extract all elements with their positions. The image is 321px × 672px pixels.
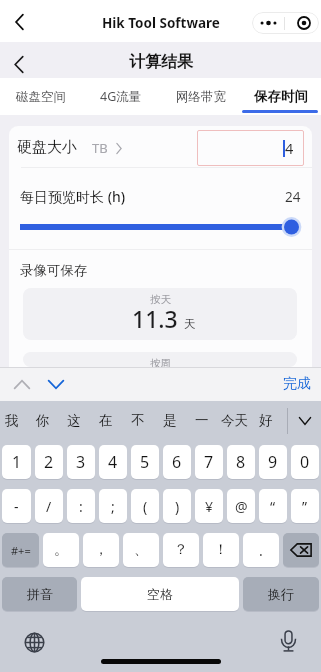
button[interactable]: #+= bbox=[2, 533, 39, 567]
staticText: 4G流量 bbox=[100, 88, 142, 105]
button[interactable]: 完成 bbox=[283, 375, 311, 393]
button[interactable]: 好 bbox=[250, 401, 282, 440]
staticText: 是 bbox=[163, 412, 177, 429]
button[interactable]: “ bbox=[259, 489, 287, 523]
button[interactable]: 保存时间 bbox=[241, 78, 321, 115]
staticText: 。 bbox=[54, 541, 68, 559]
staticText: 4 bbox=[285, 138, 294, 158]
button[interactable]: 8 bbox=[227, 445, 255, 479]
staticText: 每日预览时长 (h) bbox=[20, 187, 126, 206]
staticText: TB bbox=[92, 139, 108, 157]
staticText: 你 bbox=[36, 412, 50, 429]
button[interactable]: / bbox=[35, 489, 63, 523]
staticText: ” bbox=[302, 497, 308, 516]
button[interactable]: ( bbox=[131, 489, 159, 523]
staticText: 6 bbox=[172, 451, 182, 473]
staticText: 空格 bbox=[147, 586, 173, 602]
button[interactable]: 不 bbox=[122, 401, 154, 440]
button[interactable]: 4G流量 bbox=[81, 78, 161, 115]
button[interactable]: 4 bbox=[197, 130, 304, 166]
staticText: 9 bbox=[268, 451, 278, 473]
staticText: 24 bbox=[285, 188, 301, 206]
button[interactable]: 我 bbox=[0, 401, 27, 440]
button[interactable]: 一 bbox=[186, 401, 218, 440]
button[interactable]: 、 bbox=[123, 533, 159, 567]
staticText: 天 bbox=[184, 317, 196, 331]
staticText: 磁盘空间 bbox=[16, 89, 66, 105]
button[interactable]: 你 bbox=[27, 401, 58, 440]
button[interactable]: 3 bbox=[67, 445, 95, 479]
button[interactable]: 4 bbox=[99, 445, 127, 479]
staticText: 按天 bbox=[150, 293, 171, 306]
staticText: @ bbox=[235, 497, 248, 516]
staticText: 网络带宽 bbox=[176, 89, 226, 105]
button[interactable]: Back bbox=[6, 9, 32, 35]
button[interactable]: 。 bbox=[43, 533, 79, 567]
staticText: 这 bbox=[67, 412, 81, 429]
button[interactable]: Voice input bbox=[274, 627, 302, 655]
staticText: : bbox=[79, 497, 83, 516]
staticText: 好 bbox=[259, 412, 273, 429]
button[interactable]: 网络带宽 bbox=[161, 78, 241, 115]
button[interactable]: 按周 bbox=[23, 352, 297, 367]
button[interactable]: Backspace bbox=[283, 533, 319, 567]
staticText: 录像可保存 bbox=[20, 262, 88, 279]
staticText: 7 bbox=[204, 451, 214, 473]
button[interactable]: ” bbox=[291, 489, 319, 523]
staticText: 保存时间 bbox=[254, 88, 308, 105]
staticText: 2 bbox=[44, 451, 54, 473]
staticText: 拼音 bbox=[27, 586, 53, 602]
button[interactable]: ！ bbox=[203, 533, 239, 567]
button[interactable]: Navigate back bbox=[7, 52, 31, 76]
button[interactable]: 2 bbox=[35, 445, 63, 479]
staticText: “ bbox=[270, 497, 276, 516]
staticText: ( bbox=[143, 497, 148, 516]
button[interactable]: 是 bbox=[154, 401, 186, 440]
staticText: 我 bbox=[5, 412, 19, 429]
staticText: 硬盘大小 bbox=[17, 138, 77, 157]
button[interactable]: TB bbox=[92, 139, 122, 157]
button[interactable]: ; bbox=[99, 489, 127, 523]
button[interactable]: Change keyboard bbox=[20, 628, 48, 656]
staticText: ？ bbox=[174, 541, 188, 559]
button[interactable]: - bbox=[2, 489, 31, 523]
button[interactable]: ¥ bbox=[195, 489, 223, 523]
button[interactable]: 在 bbox=[90, 401, 122, 440]
button[interactable]: ？ bbox=[163, 533, 199, 567]
button[interactable]: 9 bbox=[259, 445, 287, 479]
button[interactable]: 这 bbox=[58, 401, 90, 440]
button[interactable]: More suggestions bbox=[294, 410, 316, 432]
staticText: 11.3 bbox=[132, 303, 178, 334]
button[interactable]: Close bbox=[294, 13, 314, 33]
button[interactable]: @ bbox=[227, 489, 255, 523]
staticText: 在 bbox=[99, 412, 113, 429]
staticText: ， bbox=[94, 541, 108, 559]
staticText: ; bbox=[111, 497, 115, 516]
button[interactable]: ， bbox=[83, 533, 119, 567]
button[interactable]: : bbox=[67, 489, 95, 523]
staticText: ！ bbox=[214, 541, 228, 559]
button[interactable]: Previous field bbox=[8, 370, 36, 398]
button[interactable]: 今天 bbox=[218, 401, 250, 440]
button[interactable]: 6 bbox=[163, 445, 191, 479]
button[interactable]: 按天 bbox=[23, 288, 297, 340]
button[interactable]: 5 bbox=[131, 445, 159, 479]
staticText: - bbox=[14, 497, 19, 516]
button[interactable]: ) bbox=[163, 489, 191, 523]
button[interactable]: 空格 bbox=[81, 577, 239, 611]
button[interactable]: More options bbox=[257, 12, 279, 34]
button[interactable]: 0 bbox=[291, 445, 319, 479]
staticText: 5 bbox=[140, 451, 150, 473]
button[interactable]: . bbox=[243, 533, 279, 567]
button[interactable]: 换行 bbox=[243, 577, 319, 611]
button[interactable]: 磁盘空间 bbox=[0, 78, 81, 115]
staticText: 8 bbox=[236, 451, 246, 473]
staticText: 0 bbox=[300, 451, 310, 473]
staticText: 今天 bbox=[221, 412, 248, 429]
button[interactable]: 1 bbox=[2, 445, 31, 479]
button[interactable]: 7 bbox=[195, 445, 223, 479]
button[interactable]: Next field bbox=[42, 370, 70, 398]
button[interactable]: 拼音 bbox=[2, 577, 77, 611]
staticText: 计算结果 bbox=[129, 52, 193, 72]
staticText: #+= bbox=[11, 543, 31, 558]
